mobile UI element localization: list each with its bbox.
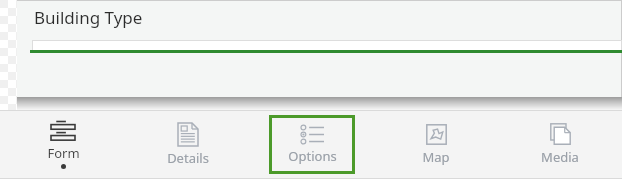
staticText: Options — [288, 147, 337, 165]
staticText: Building Type — [34, 6, 143, 29]
staticText: Form — [47, 144, 80, 162]
button[interactable]: Options — [269, 115, 355, 174]
staticText: Media — [541, 148, 579, 166]
button[interactable]: Media — [517, 115, 603, 174]
button[interactable]: Form — [20, 115, 106, 174]
button[interactable] — [32, 40, 622, 53]
staticText: Details — [167, 149, 209, 167]
button[interactable]: Details — [145, 115, 231, 174]
button[interactable]: Map — [393, 115, 479, 174]
staticText: Map — [422, 148, 450, 166]
